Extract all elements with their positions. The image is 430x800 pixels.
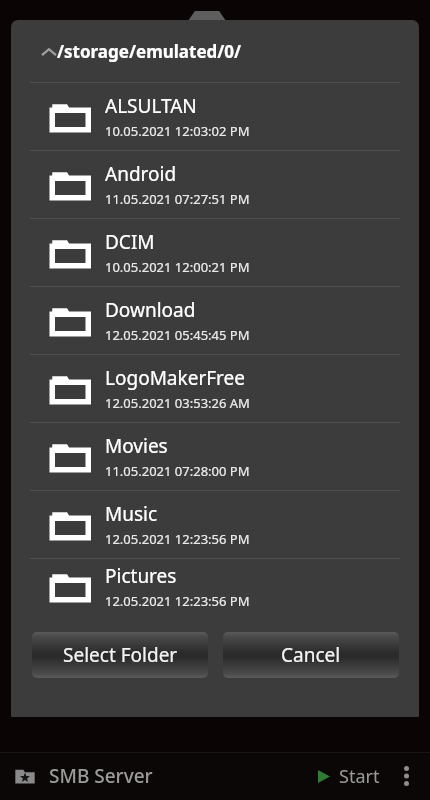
- button[interactable]: Download: [11, 287, 419, 354]
- button[interactable]: Movies: [11, 423, 419, 490]
- staticText: ALSULTAN: [105, 93, 197, 119]
- staticText: 10.05.2021 12:00:21 PM: [105, 258, 250, 276]
- button[interactable]: ALSULTAN: [11, 83, 419, 150]
- button[interactable]: Select Folder: [32, 632, 208, 678]
- staticText: 10.05.2021 12:03:02 PM: [105, 122, 250, 140]
- staticText: Pictures: [105, 563, 177, 589]
- staticText: LogoMakerFree: [105, 365, 245, 391]
- staticText: Start: [339, 764, 380, 789]
- staticText: Movies: [105, 433, 168, 459]
- staticText: 12.05.2021 12:23:56 PM: [105, 592, 250, 610]
- staticText: Select Folder: [63, 642, 178, 668]
- staticText: SMB Server: [49, 763, 153, 789]
- button[interactable]: More options: [396, 759, 416, 793]
- staticText: Download: [105, 297, 196, 323]
- staticText: 11.05.2021 07:27:51 PM: [105, 190, 250, 208]
- button[interactable]: Music: [11, 491, 419, 558]
- staticText: Music: [105, 501, 158, 527]
- staticText: 12.05.2021 03:53:26 AM: [105, 394, 250, 412]
- button[interactable]: Pictures: [11, 559, 419, 614]
- staticText: 11.05.2021 07:28:00 PM: [105, 462, 250, 480]
- button[interactable]: LogoMakerFree: [11, 355, 419, 422]
- staticText: DCIM: [105, 229, 155, 255]
- staticText: Android: [105, 161, 177, 187]
- button[interactable]: Android: [11, 151, 419, 218]
- staticText: 12.05.2021 12:23:56 PM: [105, 530, 250, 548]
- staticText: 12.05.2021 05:45:45 PM: [105, 326, 250, 344]
- button[interactable]: DCIM: [11, 219, 419, 286]
- button[interactable]: Cancel: [223, 632, 399, 678]
- staticText: /storage/emulated/0/: [57, 40, 242, 63]
- staticText: Cancel: [281, 642, 341, 668]
- button[interactable]: Shared folders: [14, 765, 36, 787]
- button[interactable]: /storage/emulated/0/: [11, 20, 419, 82]
- button[interactable]: Start: [313, 758, 384, 795]
